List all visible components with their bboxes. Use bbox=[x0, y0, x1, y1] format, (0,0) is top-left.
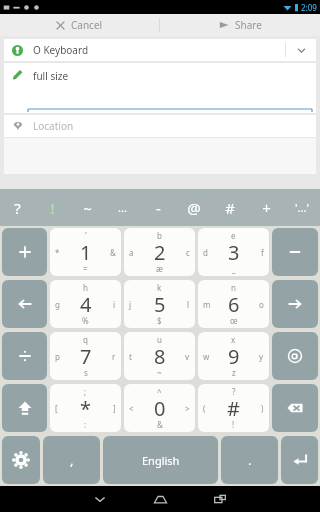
staticText: '...' bbox=[295, 200, 309, 215]
button[interactable]: O Keyboard bbox=[4, 39, 316, 61]
staticText: $ bbox=[157, 315, 162, 326]
staticText: @ bbox=[187, 198, 201, 218]
button[interactable]: At sign bbox=[272, 332, 318, 380]
staticText: < bbox=[129, 403, 134, 414]
staticText: ~ bbox=[157, 367, 162, 378]
staticText: # bbox=[225, 198, 235, 218]
button[interactable]: Location bbox=[4, 115, 316, 137]
button[interactable]: # bbox=[212, 189, 248, 226]
button[interactable]: Choose account bbox=[286, 39, 316, 61]
button[interactable]: , bbox=[43, 436, 100, 484]
button[interactable]: * bbox=[50, 384, 121, 432]
staticText: English bbox=[142, 453, 180, 468]
staticText: v bbox=[185, 351, 190, 362]
button[interactable]: ? bbox=[0, 189, 35, 226]
staticText: z bbox=[232, 367, 236, 378]
button[interactable]: ! bbox=[35, 189, 70, 226]
button[interactable]: . bbox=[221, 436, 278, 484]
staticText: & bbox=[110, 247, 116, 258]
button[interactable]: Settings bbox=[2, 436, 40, 484]
button[interactable]: 0 bbox=[124, 384, 195, 432]
staticText: 2:09 bbox=[301, 2, 317, 13]
staticText: 9 bbox=[228, 343, 240, 370]
button[interactable]: Shift bbox=[2, 384, 47, 432]
staticText: q bbox=[83, 334, 88, 345]
button[interactable]: 8 bbox=[124, 332, 195, 380]
button[interactable]: # bbox=[198, 384, 269, 432]
staticText: ' bbox=[85, 230, 87, 241]
staticText: g bbox=[55, 299, 60, 310]
staticText: 1 bbox=[80, 239, 92, 266]
staticText: m bbox=[203, 299, 211, 310]
button[interactable]: Hide keyboard bbox=[70, 486, 130, 512]
staticText: Share bbox=[235, 18, 262, 32]
button[interactable]: 7 bbox=[50, 332, 121, 380]
staticText: f bbox=[261, 247, 264, 258]
staticText: o bbox=[259, 299, 264, 310]
staticText: ... bbox=[118, 200, 127, 215]
staticText: k bbox=[157, 282, 162, 293]
staticText: n bbox=[231, 282, 236, 293]
staticText: , bbox=[70, 451, 74, 469]
staticText: p bbox=[55, 351, 60, 362]
button[interactable]: Backspace bbox=[272, 384, 318, 432]
button[interactable]: + bbox=[248, 189, 284, 226]
staticText: & bbox=[157, 419, 163, 430]
staticText: s bbox=[84, 367, 88, 378]
staticText: # bbox=[227, 395, 240, 422]
staticText: 3 bbox=[228, 239, 240, 266]
staticText: ] bbox=[113, 403, 116, 414]
button[interactable]: 2 bbox=[124, 228, 195, 276]
button[interactable]: 5 bbox=[124, 280, 195, 328]
staticText: [ bbox=[55, 403, 58, 414]
staticText: full size bbox=[33, 69, 69, 83]
button[interactable]: Recent apps bbox=[190, 486, 250, 512]
button[interactable]: - bbox=[140, 189, 176, 226]
staticText: 4 bbox=[80, 291, 92, 318]
staticText: Location bbox=[33, 119, 74, 133]
staticText: u bbox=[157, 334, 162, 345]
button[interactable]: 3 bbox=[198, 228, 269, 276]
button[interactable]: @ bbox=[176, 189, 212, 226]
staticText: e bbox=[231, 230, 236, 241]
staticText: y bbox=[259, 351, 264, 362]
button[interactable]: Minus bbox=[272, 228, 318, 276]
staticText: t bbox=[129, 351, 132, 362]
staticText: O Keyboard bbox=[33, 43, 89, 57]
button[interactable]: Plus bbox=[2, 228, 47, 276]
button[interactable]: Enter bbox=[281, 436, 318, 484]
button[interactable]: English bbox=[103, 436, 218, 484]
staticText: ? bbox=[14, 198, 21, 218]
staticText: l bbox=[187, 299, 190, 310]
staticText: = bbox=[83, 263, 88, 274]
button[interactable]: Cancel bbox=[0, 14, 159, 36]
button[interactable]: ... bbox=[105, 189, 140, 226]
staticText: * bbox=[55, 247, 60, 258]
staticText: c bbox=[186, 247, 190, 258]
staticText: a bbox=[129, 247, 134, 258]
staticText: ; bbox=[84, 386, 87, 397]
button[interactable]: Move left bbox=[2, 280, 47, 328]
staticText: æ bbox=[156, 263, 163, 274]
button[interactable]: full size bbox=[4, 63, 316, 113]
staticText: % bbox=[82, 315, 89, 326]
staticText: j bbox=[129, 299, 132, 310]
button[interactable]: '...' bbox=[284, 189, 320, 226]
button[interactable]: Move right bbox=[272, 280, 318, 328]
button[interactable]: Divide bbox=[2, 332, 47, 380]
staticText: 0 bbox=[154, 395, 166, 422]
button[interactable]: Share bbox=[160, 14, 320, 36]
staticText: ! bbox=[232, 419, 235, 430]
button[interactable]: 9 bbox=[198, 332, 269, 380]
staticText: ? bbox=[232, 386, 236, 397]
button[interactable]: 1 bbox=[50, 228, 121, 276]
staticText: 5 bbox=[154, 291, 166, 318]
button[interactable]: Home bbox=[130, 486, 190, 512]
staticText: _ bbox=[232, 263, 236, 274]
staticText: ~ bbox=[83, 198, 92, 218]
staticText: 2 bbox=[154, 239, 166, 266]
button[interactable]: 6 bbox=[198, 280, 269, 328]
button[interactable]: ~ bbox=[70, 189, 105, 226]
button[interactable]: 4 bbox=[50, 280, 121, 328]
staticText: r bbox=[112, 351, 116, 362]
